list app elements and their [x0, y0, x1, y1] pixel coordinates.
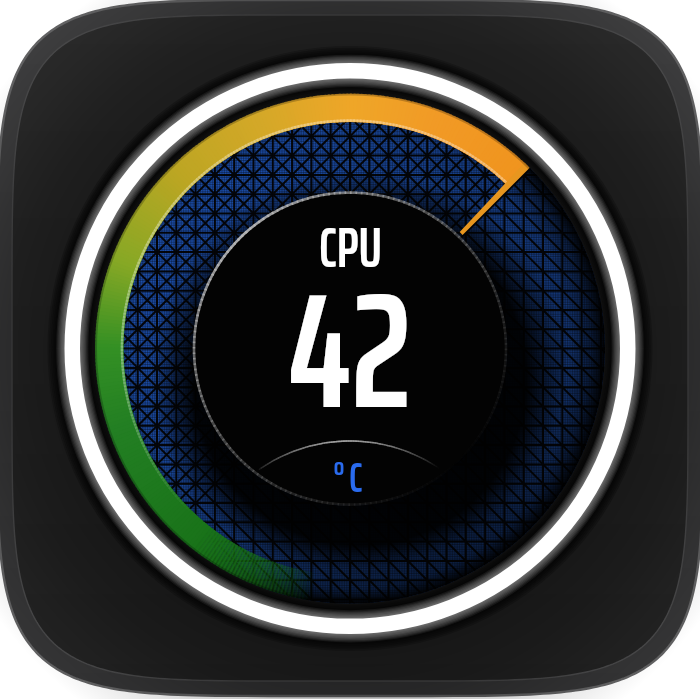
- button[interactable]: CPU temperature gauge: [0, 0, 700, 699]
- staticText: °C: [333, 444, 367, 510]
- staticText: 42: [288, 223, 412, 478]
- staticText: CPU: [319, 205, 382, 292]
